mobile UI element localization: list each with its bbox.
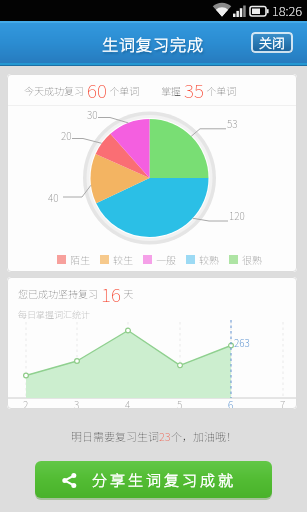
staticText: 一般 (156, 252, 176, 266)
staticText: 60 (87, 76, 107, 104)
button[interactable]: 关闭 (251, 32, 293, 53)
staticText: 关闭 (259, 33, 286, 52)
staticText: 今天成功复习 (24, 83, 87, 97)
staticText: 天 (121, 286, 134, 300)
staticText: 掌握 (161, 83, 184, 97)
staticText: 您已成功坚持复习 (18, 286, 101, 300)
staticText: 40 (48, 190, 59, 204)
staticText: 18:26 (272, 1, 303, 20)
staticText: 分享生词复习成就 (92, 469, 237, 491)
staticText: 很熟 (242, 252, 262, 266)
staticText: 120 (229, 208, 245, 222)
button[interactable]: 分享生词复习成就 (35, 461, 272, 498)
staticText: 23 (159, 428, 171, 444)
staticText: 个单词 (204, 83, 237, 97)
staticText: 16 (101, 280, 121, 306)
staticText: 每日掌握词汇统计 (18, 308, 91, 321)
staticText: 个单词 (107, 83, 140, 97)
staticText: 较生 (113, 252, 133, 266)
staticText: 较熟 (199, 252, 219, 266)
staticText: 20 (61, 128, 72, 142)
staticText: 生词复习完成 (102, 32, 205, 55)
staticText: 陌生 (70, 252, 90, 266)
staticText: 个，加油哦！ (171, 428, 237, 444)
staticText: 明日需要复习生词 (71, 428, 159, 444)
staticText: 30 (87, 107, 98, 121)
staticText: 53 (227, 116, 238, 130)
staticText: 35 (184, 76, 204, 104)
